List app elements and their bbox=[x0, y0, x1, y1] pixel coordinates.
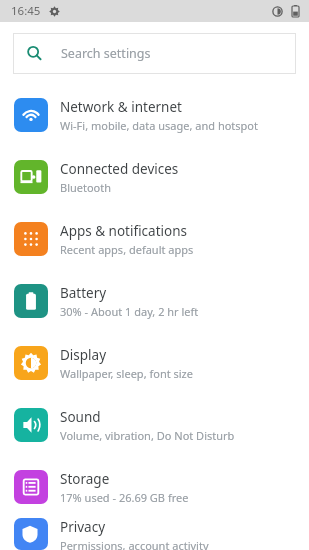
button[interactable]: Search bbox=[13, 33, 296, 74]
staticText: Volume, vibration, Do Not Disturb bbox=[60, 428, 235, 443]
button[interactable]: Display bbox=[0, 332, 309, 394]
staticText: Wi-Fi, mobile, data usage, and hotspot bbox=[60, 118, 258, 133]
other: Search bbox=[26, 45, 43, 62]
staticText: Apps & notifications bbox=[60, 222, 187, 240]
staticText: Privacy bbox=[60, 518, 106, 536]
button[interactable]: Storage bbox=[0, 456, 309, 518]
button[interactable]: Battery bbox=[0, 270, 309, 332]
staticText: 16:45 bbox=[11, 3, 41, 19]
staticText: Network & internet bbox=[60, 98, 182, 116]
staticText: Sound bbox=[60, 408, 101, 426]
staticText: Permissions, account activity bbox=[60, 538, 209, 550]
staticText: Battery bbox=[60, 284, 107, 302]
staticText: Connected devices bbox=[60, 160, 179, 178]
button[interactable]: Sound bbox=[0, 394, 309, 456]
button[interactable]: Connected devices bbox=[0, 146, 309, 208]
button[interactable]: Apps & notifications bbox=[0, 208, 309, 270]
staticText: Display bbox=[60, 346, 107, 364]
button[interactable]: Network & internet bbox=[0, 84, 309, 146]
staticText: Recent apps, default apps bbox=[60, 242, 194, 257]
staticText: 30% - About 1 day, 2 hr left bbox=[60, 304, 199, 319]
staticText: Wallpaper, sleep, font size bbox=[60, 366, 193, 381]
button[interactable]: Privacy bbox=[0, 518, 309, 550]
staticText: 17% used - 26.69 GB free bbox=[60, 490, 189, 505]
staticText: Search settings bbox=[61, 45, 151, 62]
staticText: Storage bbox=[60, 470, 110, 488]
staticText: Bluetooth bbox=[60, 180, 112, 195]
